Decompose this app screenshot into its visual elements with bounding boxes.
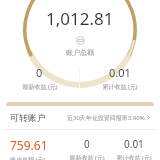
button[interactable]: 可转账户	[3, 106, 157, 160]
staticText: 0.01	[109, 65, 131, 80]
staticText: 账户总额	[66, 48, 94, 57]
staticText: 最新收益 (元)	[22, 83, 58, 91]
staticText: 759.61	[10, 137, 48, 153]
button[interactable]: Toggle balance visibility	[76, 36, 85, 45]
staticText: 累计收益 (元)	[102, 83, 138, 91]
staticText: 账户总额 (元)	[10, 156, 46, 160]
staticText: 0	[36, 65, 43, 80]
button[interactable]: 0	[0, 65, 79, 91]
staticText: 累计收益 (元)	[116, 154, 152, 160]
staticText: 0.01	[124, 137, 144, 151]
staticText: 可转账户	[10, 112, 46, 123]
staticText: 0	[84, 137, 90, 151]
staticText: 1,012.81	[46, 7, 114, 30]
staticText: 最新收益 (元)	[69, 154, 105, 160]
staticText: 近30天年化投资回报率3.90%	[67, 114, 145, 122]
button[interactable]: 0.01	[80, 65, 160, 91]
button[interactable]: 0.01	[110, 137, 157, 160]
button[interactable]: 0	[63, 137, 110, 160]
